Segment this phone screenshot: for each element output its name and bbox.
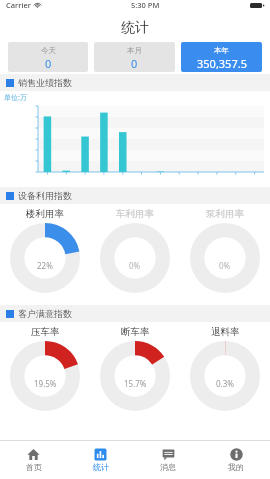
staticText: Carrier [6, 0, 31, 10]
button[interactable]: 15.7% [90, 341, 180, 411]
staticText: 客户满意指数 [18, 308, 72, 319]
button[interactable]: 首页 [0, 441, 67, 479]
staticText: 本月 [127, 46, 142, 55]
button[interactable]: 本年 [181, 42, 262, 72]
staticText: 断车率 [121, 326, 150, 338]
button[interactable]: 统计 [67, 441, 134, 479]
staticText: 统计 [121, 19, 149, 37]
staticText: 销售业绩指数 [18, 77, 72, 88]
staticText: 今天 [41, 46, 56, 55]
button[interactable]: 今天 [8, 42, 88, 72]
staticText: 15.7% [124, 378, 147, 389]
button[interactable]: 0.3% [180, 341, 270, 411]
staticText: 0.3% [216, 378, 234, 389]
button[interactable]: 本月 [94, 42, 175, 72]
staticText: 0 [45, 56, 52, 71]
button[interactable]: 22% [0, 223, 90, 293]
staticText: 首页 [26, 462, 42, 472]
staticText: 统计 [93, 462, 109, 472]
staticText: 消息 [160, 462, 176, 472]
staticText: 退料率 [211, 326, 240, 338]
staticText: 0 [131, 56, 138, 71]
staticText: 我的 [228, 462, 244, 472]
staticText: 泵利用率 [206, 208, 244, 220]
staticText: 设备利用指数 [18, 190, 72, 201]
button[interactable]: 我的 [202, 441, 270, 479]
staticText: 楼利用率 [26, 208, 64, 220]
staticText: 车利用率 [116, 208, 154, 220]
staticText: 350,357.5 [197, 56, 247, 71]
button[interactable]: 消息 [134, 441, 202, 479]
staticText: 22% [37, 260, 53, 271]
staticText: 单位:万 [4, 93, 27, 103]
button[interactable]: 19.5% [0, 341, 90, 411]
staticText: 本年 [214, 46, 229, 55]
button[interactable]: 0% [180, 223, 270, 293]
staticText: 5:30 PM [131, 0, 160, 10]
staticText: 0% [129, 260, 141, 271]
button[interactable]: 0% [90, 223, 180, 293]
staticText: 0% [219, 260, 231, 271]
staticText: 19.5% [34, 378, 57, 389]
staticText: 压车率 [31, 326, 60, 338]
